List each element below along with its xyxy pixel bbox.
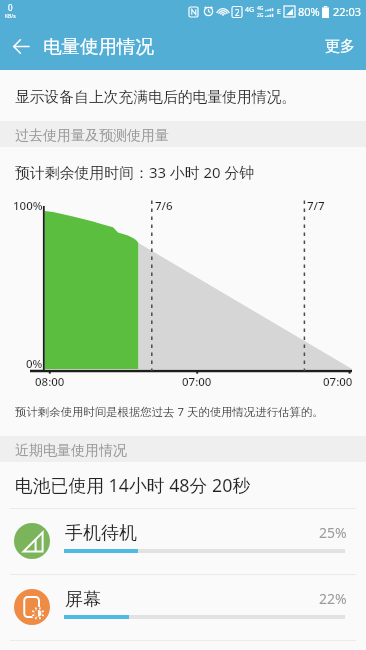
staticText: 7/6 [155,198,173,214]
staticText: 屏幕 [65,588,101,611]
staticText: 预计剩余使用时间：33 小时 20 分钟 [15,162,255,182]
staticText: 电池已使用 14小时 48分 20秒 [15,473,251,497]
staticText: 22% [319,589,347,608]
button[interactable]: 手机待机 [0,509,366,574]
staticText: 手机待机 [65,522,137,545]
staticText: 更多 [325,37,355,56]
button[interactable]: Back [0,22,42,70]
staticText: 电量使用情况 [43,35,154,58]
button[interactable]: 屏幕 [0,575,366,640]
staticText: 08:00 [35,374,65,390]
button[interactable]: 更多 [310,25,366,68]
staticText: 4G [245,5,255,15]
staticText: 100% [13,198,43,214]
staticText: 80% [298,4,320,19]
staticText: KB/s [5,13,16,20]
staticText: 7/7 [307,198,325,214]
staticText: 预计剩余使用时间是根据您过去 7 天的使用情况进行估算的。 [15,404,324,420]
staticText: 显示设备自上次充满电后的电量使用情况。 [15,88,297,107]
staticText: 近期电量使用情况 [15,442,127,460]
staticText: 2 [235,7,240,18]
staticText: 过去使用量及预测使用量 [15,127,169,145]
staticText: 07:00 [323,374,353,390]
staticText: 25% [319,523,347,542]
staticText: 22:03 [333,4,362,19]
staticText: 2G [257,12,264,19]
staticText: 07:00 [182,374,212,390]
staticText: 4G [257,5,264,12]
staticText: E [277,7,281,17]
staticText: 0 [8,2,13,13]
staticText: 0% [26,356,43,372]
